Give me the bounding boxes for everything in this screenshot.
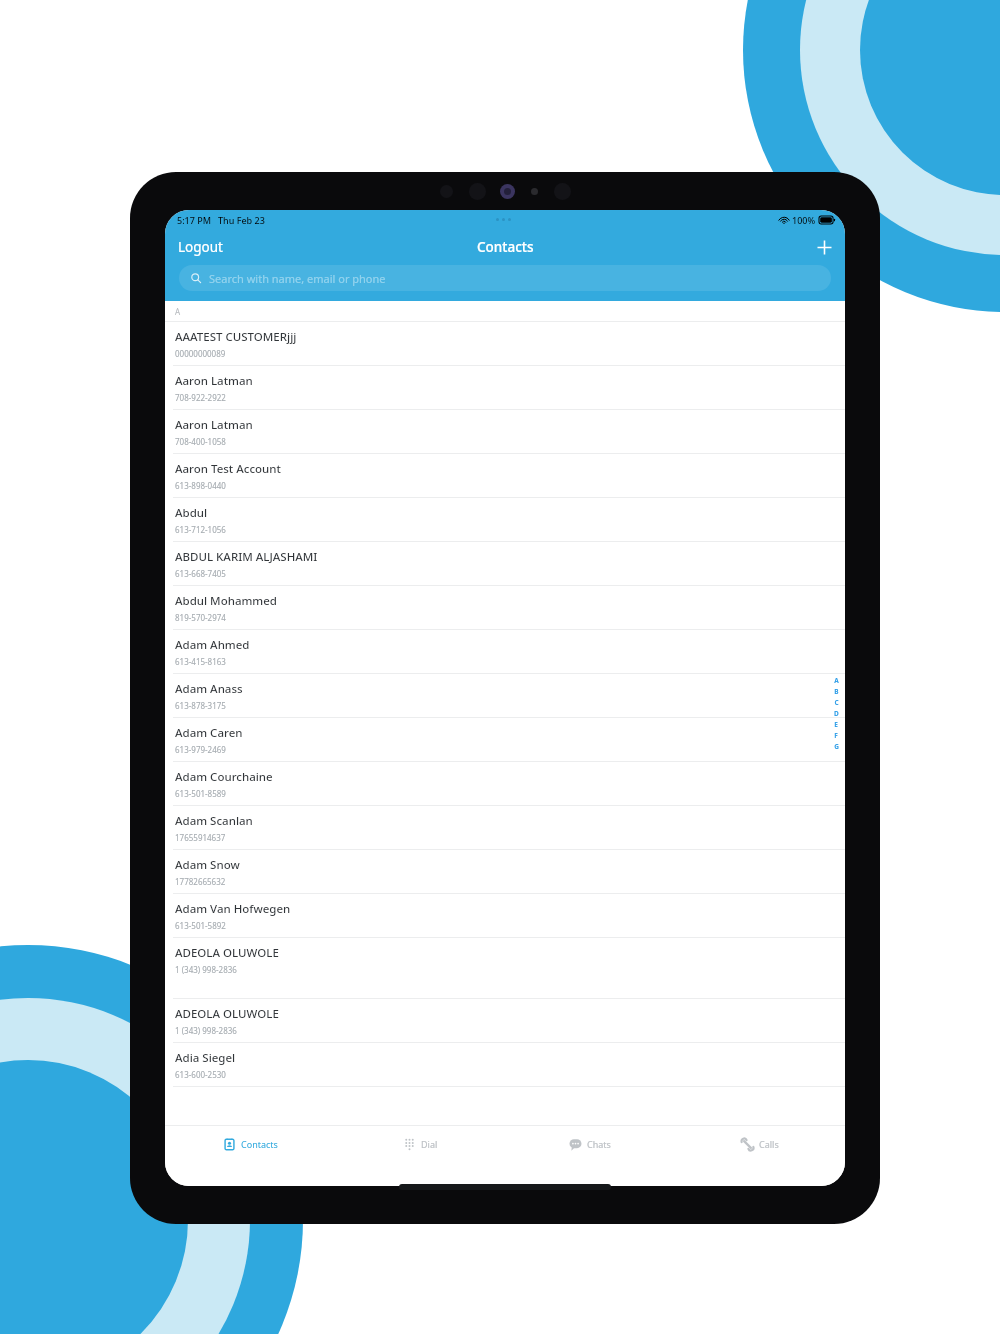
staticText: A xyxy=(834,676,839,685)
button[interactable]: C xyxy=(831,697,841,708)
staticText: AAATEST CUSTOMERjjj xyxy=(175,329,297,345)
staticText: 100% xyxy=(792,214,816,226)
staticText: 613-712-1056 xyxy=(175,524,226,535)
button[interactable]: F xyxy=(831,730,841,741)
staticText: 708-400-1058 xyxy=(175,436,226,447)
button[interactable]: Logout xyxy=(165,232,236,262)
button[interactable]: A xyxy=(831,675,841,686)
button[interactable]: B xyxy=(831,686,841,697)
button[interactable]: Abdul Mohammed xyxy=(165,586,845,630)
staticText: Adam Caren xyxy=(175,725,243,741)
button[interactable]: Adam Courchaine xyxy=(165,762,845,806)
staticText: 613-878-3175 xyxy=(175,700,226,711)
staticText: ADEOLA OLUWOLE xyxy=(175,1006,279,1022)
staticText: Logout xyxy=(178,238,223,256)
button[interactable]: Abdul xyxy=(165,498,845,542)
staticText: Adam Scanlan xyxy=(175,813,253,829)
button[interactable]: Contacts xyxy=(165,1126,335,1162)
staticText: B xyxy=(834,687,839,696)
button[interactable]: Adam Caren xyxy=(165,718,845,762)
staticText: Aaron Latman xyxy=(175,417,253,433)
staticText: 613-898-0440 xyxy=(175,480,226,491)
button[interactable]: Aaron Latman xyxy=(165,410,845,454)
button[interactable]: Aaron Latman xyxy=(165,366,845,410)
staticText: Adam Van Hofwegen xyxy=(175,901,291,917)
staticText: ADEOLA OLUWOLE xyxy=(175,945,279,961)
button[interactable]: Adam Ahmed xyxy=(165,630,845,674)
staticText: D xyxy=(834,709,839,718)
staticText: 17782665632 xyxy=(175,876,226,887)
button[interactable]: Chats xyxy=(505,1126,675,1162)
staticText: 708-922-2922 xyxy=(175,392,226,403)
staticText: Contacts xyxy=(241,1138,278,1150)
staticText: Adam Snow xyxy=(175,857,240,873)
staticText: Calls xyxy=(759,1138,779,1150)
button[interactable]: ADEOLA OLUWOLE xyxy=(165,938,845,999)
staticText: Thu Feb 23 xyxy=(218,214,265,226)
button[interactable]: G xyxy=(831,741,841,752)
button[interactable]: Aaron Test Account xyxy=(165,454,845,498)
staticText: Chats xyxy=(587,1138,611,1150)
staticText: Abdul xyxy=(175,505,208,521)
staticText: Aaron Latman xyxy=(175,373,253,389)
staticText: 613-501-8589 xyxy=(175,788,226,799)
staticText: Adia Siegel xyxy=(175,1050,236,1066)
button[interactable]: Adam Van Hofwegen xyxy=(165,894,845,938)
staticText: Contacts xyxy=(477,238,534,256)
staticText: F xyxy=(834,731,838,740)
staticText: 613-979-2469 xyxy=(175,744,226,755)
button[interactable]: Dial xyxy=(335,1126,505,1162)
button[interactable]: ADEOLA OLUWOLE xyxy=(165,999,845,1043)
staticText: 613-668-7405 xyxy=(175,568,226,579)
staticText: Adam Courchaine xyxy=(175,769,273,785)
button[interactable]: AAATEST CUSTOMERjjj xyxy=(165,322,845,366)
button[interactable]: D xyxy=(831,708,841,719)
staticText: Abdul Mohammed xyxy=(175,593,277,609)
button[interactable]: Adam Snow xyxy=(165,850,845,894)
staticText: 613-415-8163 xyxy=(175,656,226,667)
button[interactable]: Add contact xyxy=(804,234,845,261)
staticText: Aaron Test Account xyxy=(175,461,281,477)
button[interactable]: E xyxy=(831,719,841,730)
button[interactable]: Adam Scanlan xyxy=(165,806,845,850)
button[interactable]: Adia Siegel xyxy=(165,1043,845,1087)
button[interactable]: ABDUL KARIM ALJASHAMI xyxy=(165,542,845,586)
staticText: 5:17 PM xyxy=(177,214,211,226)
staticText: 00000000089 xyxy=(175,348,226,359)
staticText: Search with name, email or phone xyxy=(209,271,386,286)
staticText: G xyxy=(834,742,839,751)
staticText: 1 (343) 998-2836 xyxy=(175,1025,237,1036)
button[interactable]: Calls xyxy=(675,1126,845,1162)
button[interactable]: Adam Anass xyxy=(165,674,845,718)
staticText: Adam Anass xyxy=(175,681,243,697)
staticText: Adam Ahmed xyxy=(175,637,250,653)
staticText: Dial xyxy=(421,1138,438,1150)
staticText: 613-501-5892 xyxy=(175,920,226,931)
staticText: 613-600-2530 xyxy=(175,1069,226,1080)
staticText: A xyxy=(175,306,181,317)
staticText: C xyxy=(834,698,839,707)
button[interactable]: Search with name, email or phone xyxy=(179,265,831,291)
staticText: 1 (343) 998-2836 xyxy=(175,964,237,975)
staticText: E xyxy=(834,720,838,729)
staticText: ABDUL KARIM ALJASHAMI xyxy=(175,549,318,565)
staticText: 819-570-2974 xyxy=(175,612,226,623)
staticText: 17655914637 xyxy=(175,832,226,843)
